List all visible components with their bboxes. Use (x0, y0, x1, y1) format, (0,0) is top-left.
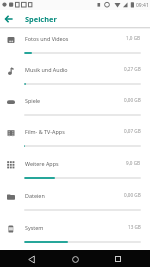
staticText: System (25, 224, 44, 231)
staticText: 1,0 GB (126, 35, 141, 41)
staticText: Spiele (25, 97, 41, 104)
staticText: 09:41 (136, 2, 149, 9)
button[interactable]: Weitere Apps (0, 154, 150, 186)
staticText: 0,27 GB (124, 66, 141, 72)
staticText: Musik und Audio (25, 66, 68, 73)
staticText: 0,00 GB (124, 192, 141, 198)
button[interactable] (111, 252, 125, 266)
staticText: 0,00 GB (124, 97, 141, 103)
button[interactable] (24, 252, 38, 266)
button[interactable]: System (0, 218, 150, 250)
staticText: 0,07 GB (124, 128, 141, 134)
button[interactable] (68, 252, 82, 266)
staticText: Dateien (25, 192, 45, 199)
staticText: Fotos und Videos (25, 35, 69, 42)
button[interactable]: Musik und Audio (0, 60, 150, 91)
staticText: Weitere Apps (25, 160, 59, 167)
staticText: Film- & TV-Apps (25, 128, 65, 135)
staticText: 13 GB (128, 224, 141, 230)
staticText: Speicher (25, 14, 57, 24)
staticText: 9,0 GB (126, 160, 141, 166)
button[interactable] (2, 12, 15, 25)
button[interactable]: Fotos und Videos (0, 29, 150, 60)
button[interactable]: Spiele (0, 91, 150, 122)
button[interactable]: Dateien (0, 186, 150, 218)
button[interactable]: Film- & TV-Apps (0, 122, 150, 154)
